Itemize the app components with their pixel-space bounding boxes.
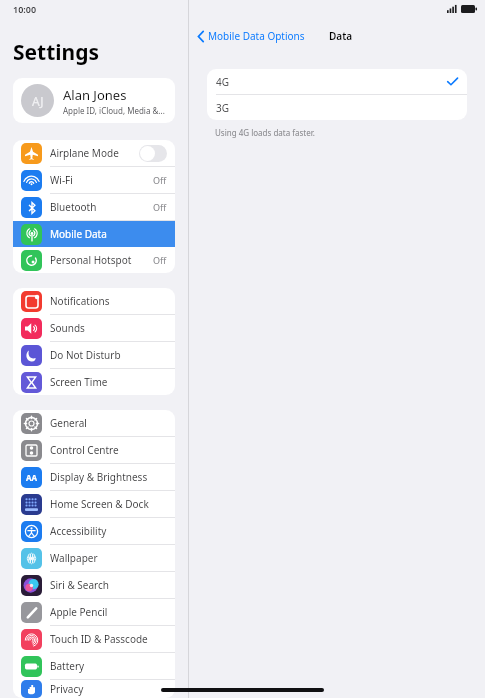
button[interactable]: Mobile Data	[13, 221, 175, 247]
staticText: Wi-Fi	[50, 173, 153, 187]
staticText: Off	[153, 254, 167, 266]
staticText: Apple ID, iCloud, Media &...	[63, 105, 165, 116]
button[interactable]: Screen Time	[13, 369, 175, 395]
button[interactable]: Touch ID & Passcode	[13, 626, 175, 652]
staticText: Alan Jones	[63, 86, 127, 104]
button[interactable]: Notifications	[13, 288, 175, 314]
button[interactable]: Sounds	[13, 315, 175, 341]
button[interactable]: Wi-Fi	[13, 167, 175, 193]
staticText: Sounds	[50, 321, 167, 335]
staticText: Control Centre	[50, 443, 167, 457]
button[interactable]: Do Not Disturb	[13, 342, 175, 368]
button[interactable]: AA	[13, 464, 175, 490]
button[interactable]: Airplane Mode toggle	[139, 145, 167, 162]
button[interactable]: Accessibility	[13, 518, 175, 544]
staticText: Personal Hotspot	[50, 253, 153, 267]
staticText: 3G	[216, 101, 229, 115]
staticText: Battery	[50, 659, 167, 673]
button[interactable]: Siri & Search	[13, 572, 175, 598]
staticText: Off	[153, 174, 167, 186]
staticText: AA	[26, 472, 38, 483]
staticText: Notifications	[50, 294, 167, 308]
staticText: Do Not Disturb	[50, 348, 167, 362]
staticText: Screen Time	[50, 375, 167, 389]
button[interactable]: Bluetooth	[13, 194, 175, 220]
staticText: Wallpaper	[50, 551, 167, 565]
button[interactable]: Home Screen & Dock	[13, 491, 175, 517]
button[interactable]: Battery	[13, 653, 175, 679]
button[interactable]: AJ	[13, 78, 175, 123]
button[interactable]: Control Centre	[13, 437, 175, 463]
button[interactable]: Wallpaper	[13, 545, 175, 571]
staticText: 10:00	[13, 3, 37, 15]
button[interactable]: Personal Hotspot	[13, 247, 175, 273]
button[interactable]: 4G	[207, 69, 467, 94]
button[interactable]: Airplane Mode	[13, 140, 175, 166]
staticText: Using 4G loads data faster.	[215, 127, 315, 138]
staticText: Settings	[13, 38, 100, 67]
button[interactable]: Apple Pencil	[13, 599, 175, 625]
staticText: Display & Brightness	[50, 470, 167, 484]
staticText: 4G	[216, 75, 447, 89]
staticText: Off	[153, 201, 167, 213]
button[interactable]: Mobile Data Options	[197, 29, 305, 43]
button[interactable]: General	[13, 410, 175, 436]
staticText: AJ	[32, 93, 44, 109]
staticText: Accessibility	[50, 524, 167, 538]
staticText: General	[50, 416, 167, 430]
staticText: Apple Pencil	[50, 605, 167, 619]
staticText: Data	[329, 29, 353, 43]
staticText: Mobile Data Options	[208, 29, 305, 43]
staticText: Privacy	[50, 682, 167, 696]
button[interactable]: Privacy	[13, 680, 175, 698]
staticText: Siri & Search	[50, 578, 167, 592]
staticText: Touch ID & Passcode	[50, 632, 167, 646]
staticText: Airplane Mode	[50, 146, 139, 160]
staticText: Bluetooth	[50, 200, 153, 214]
staticText: Mobile Data	[50, 227, 167, 241]
button[interactable]: 3G	[207, 95, 467, 120]
staticText: Home Screen & Dock	[50, 497, 167, 511]
